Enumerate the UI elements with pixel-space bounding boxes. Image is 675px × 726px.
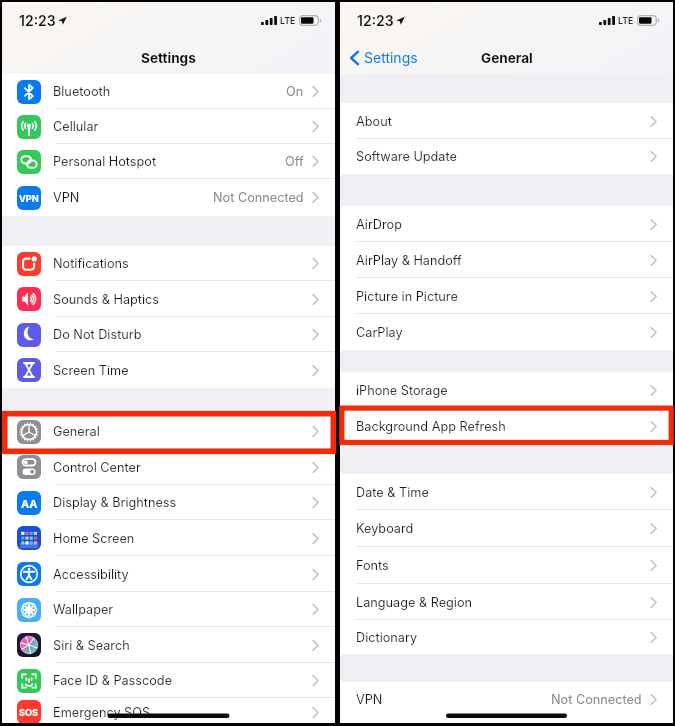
button[interactable]: AirDrop (340, 206, 673, 242)
button[interactable]: Background App Refresh (340, 408, 673, 444)
button[interactable]: Picture in Picture (340, 278, 673, 314)
staticText: Screen Time (53, 363, 129, 378)
button[interactable]: AA (2, 485, 335, 520)
staticText: Siri & Search (53, 638, 130, 653)
staticText: Date & Time (356, 485, 429, 500)
button[interactable]: Software Update (340, 139, 673, 174)
staticText: Control Center (53, 460, 141, 475)
button[interactable]: Back to Settings (350, 41, 418, 74)
button[interactable]: iPhone Storage (340, 372, 673, 408)
staticText: Software Update (356, 149, 457, 164)
staticText: Wallpaper (53, 602, 114, 617)
button[interactable]: Screen Time (2, 352, 335, 388)
staticText: General (481, 50, 533, 66)
staticText: iPhone Storage (356, 383, 448, 398)
button[interactable]: Dictionary (340, 620, 673, 654)
staticText: On (286, 84, 304, 99)
staticText: VPN (356, 692, 383, 707)
button[interactable]: Date & Time (340, 474, 673, 510)
staticText: Dictionary (356, 630, 418, 645)
staticText: Keyboard (356, 521, 414, 536)
button[interactable]: About (340, 103, 673, 139)
button[interactable]: Sounds & Haptics (2, 281, 335, 317)
button[interactable]: Fonts (340, 547, 673, 584)
button[interactable]: Face ID & Passcode (2, 663, 335, 698)
staticText: Face ID & Passcode (53, 673, 173, 688)
staticText: Settings (364, 49, 418, 66)
staticText: Picture in Picture (356, 289, 458, 304)
staticText: Not Connected (213, 190, 304, 205)
staticText: Accessibility (53, 567, 129, 582)
button[interactable]: Do Not Disturb (2, 317, 335, 352)
button[interactable]: VPN (2, 179, 335, 216)
staticText: General (53, 424, 100, 439)
button[interactable]: CarPlay (340, 314, 673, 350)
staticText: AirPlay & Handoff (356, 253, 462, 268)
button[interactable]: Keyboard (340, 510, 673, 547)
button[interactable]: Personal Hotspot (2, 144, 335, 179)
staticText: Bluetooth (53, 84, 111, 99)
staticText: Display & Brightness (53, 495, 177, 510)
staticText: VPN (53, 190, 80, 205)
staticText: About (356, 114, 392, 129)
staticText: Settings (141, 50, 196, 66)
staticText: Cellular (53, 119, 99, 134)
staticText: LTE (618, 15, 634, 26)
button[interactable]: Cellular (2, 109, 335, 144)
staticText: Notifications (53, 256, 129, 271)
button[interactable]: General (2, 414, 335, 449)
button[interactable]: Bluetooth (2, 74, 335, 109)
staticText: 12:23 (19, 12, 56, 29)
button[interactable]: Siri & Search (2, 627, 335, 663)
button[interactable]: Wallpaper (2, 592, 335, 627)
staticText: AirDrop (356, 217, 402, 232)
staticText: AA (21, 497, 38, 510)
staticText: CarPlay (356, 325, 403, 340)
button[interactable]: Accessibility (2, 556, 335, 592)
button[interactable]: Control Center (2, 449, 335, 485)
staticText: Off (285, 154, 304, 169)
staticText: Language & Region (356, 595, 473, 610)
staticText: Home Screen (53, 531, 135, 546)
staticText: Personal Hotspot (53, 154, 157, 169)
staticText: VPN (19, 193, 39, 204)
staticText: Do Not Disturb (53, 327, 142, 342)
staticText: SOS (19, 707, 39, 718)
button[interactable]: SOS (2, 698, 335, 726)
staticText: Sounds & Haptics (53, 292, 160, 307)
button[interactable]: Home Screen (2, 520, 335, 556)
staticText: Fonts (356, 558, 389, 573)
staticText: Background App Refresh (356, 419, 506, 434)
button[interactable]: Notifications (2, 246, 335, 281)
staticText: Emergency SOS (53, 705, 151, 720)
button[interactable]: Language & Region (340, 584, 673, 620)
staticText: LTE (280, 15, 296, 26)
staticText: 12:23 (357, 12, 394, 29)
button[interactable]: VPN (340, 682, 673, 717)
button[interactable]: AirPlay & Handoff (340, 242, 673, 278)
staticText: Not Connected (551, 692, 642, 707)
